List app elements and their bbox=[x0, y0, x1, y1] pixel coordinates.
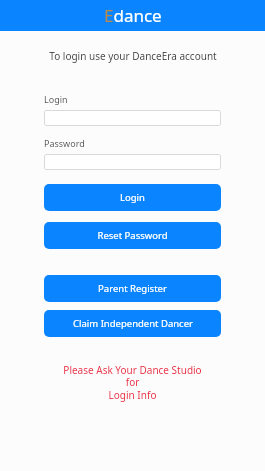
staticText: Login bbox=[120, 191, 145, 204]
button[interactable]: Claim Independent Dancer bbox=[44, 310, 221, 337]
staticText: Please Ask Your Dance Studio for Login I… bbox=[63, 363, 202, 402]
button[interactable]: Reset Password bbox=[44, 222, 221, 249]
staticText: Reset Password bbox=[97, 229, 168, 242]
button[interactable]: Login bbox=[44, 184, 221, 211]
staticText: Login bbox=[44, 93, 68, 105]
button[interactable] bbox=[44, 110, 221, 126]
staticText: Claim Independent Dancer bbox=[73, 317, 193, 330]
staticText: Parent Register bbox=[98, 282, 167, 295]
button[interactable] bbox=[44, 154, 221, 170]
staticText: Password bbox=[44, 137, 85, 149]
staticText: To login use your DanceEra account bbox=[49, 49, 217, 63]
staticText: Edance bbox=[104, 4, 162, 27]
button[interactable]: Parent Register bbox=[44, 275, 221, 302]
